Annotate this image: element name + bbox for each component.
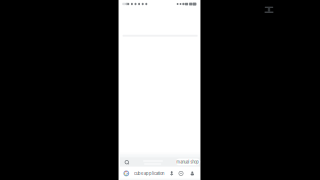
staticText: cube application [134,171,164,176]
button[interactable]: Google Lens [177,167,184,180]
button[interactable]: Recent search [120,153,174,167]
button[interactable]: Account [189,167,196,180]
staticText: manual shop [176,159,199,164]
button[interactable]: Voice search [168,167,175,180]
button[interactable]: cube application [123,167,167,180]
button[interactable]: manual shop [176,159,200,165]
